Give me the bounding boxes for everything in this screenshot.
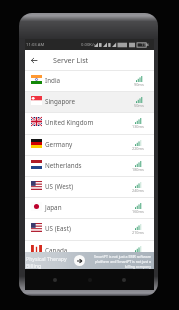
staticText: Japan: [45, 203, 62, 212]
staticText: Germany: [45, 140, 73, 149]
staticText: 240ms: [132, 188, 144, 193]
staticText: US (East): [45, 224, 71, 233]
button[interactable]: Back: [25, 50, 42, 70]
staticText: 220ms: [132, 146, 144, 151]
staticText: US (West): [45, 182, 74, 191]
staticText: 230ms: [132, 252, 144, 257]
button[interactable]: Home: [88, 278, 92, 282]
staticText: 90ms: [134, 82, 144, 87]
staticText: 11:03 AM: [26, 42, 45, 48]
staticText: 0.00K/s: [81, 42, 96, 48]
button[interactable]: Canada: [25, 240, 154, 261]
staticText: United Kingdom: [45, 118, 94, 127]
button[interactable]: Singapore: [25, 91, 154, 112]
staticText: SmartPT is not just a EMR software: [93, 254, 151, 259]
staticText: Singapore: [45, 97, 76, 106]
staticText: Billing: [26, 262, 42, 269]
staticText: 210ms: [132, 230, 144, 235]
button[interactable]: Japan: [25, 197, 154, 218]
button[interactable]: India: [25, 70, 154, 91]
button[interactable]: US (West): [25, 176, 154, 197]
staticText: billing company: [124, 264, 151, 269]
staticText: 19%: [141, 42, 150, 48]
staticText: 130ms: [132, 124, 144, 129]
staticText: Server List: [53, 55, 89, 65]
button[interactable]: Germany: [25, 134, 154, 155]
staticText: 180ms: [132, 167, 144, 172]
staticText: Physical Therapy: [26, 255, 67, 262]
staticText: 160ms: [132, 209, 144, 214]
staticText: platform and SmartPT is not just a: [94, 259, 151, 264]
button[interactable]: US (East): [25, 218, 154, 239]
button[interactable]: Open advertisement: [74, 255, 85, 266]
button[interactable]: United Kingdom: [25, 112, 154, 133]
button[interactable]: Physical Therapy: [25, 252, 154, 269]
staticText: India: [45, 76, 61, 85]
staticText: 50ms: [134, 103, 144, 108]
staticText: Canada: [45, 246, 68, 255]
button[interactable]: Back: [53, 278, 57, 282]
staticText: Netherlands: [45, 161, 82, 170]
button[interactable]: Netherlands: [25, 155, 154, 176]
button[interactable]: Recents: [122, 278, 126, 282]
